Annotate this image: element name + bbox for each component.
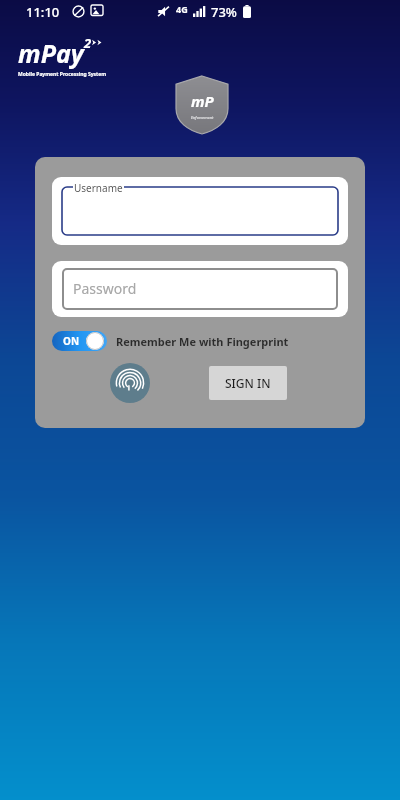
button[interactable]: SIGN IN [209, 366, 287, 400]
staticText: Username [74, 181, 123, 195]
staticText: SIGN IN [225, 375, 271, 391]
staticText: mP [191, 91, 214, 111]
button[interactable]: Username [52, 177, 348, 245]
staticText: Mobile Payment Processing System [18, 71, 107, 78]
staticText: 2 [84, 34, 92, 52]
staticText: mPay [18, 36, 84, 70]
button[interactable]: ON [52, 329, 289, 353]
staticText: Enforcement [191, 115, 214, 120]
staticText: 11:10 [26, 3, 60, 21]
button[interactable]: Password [52, 261, 348, 317]
button[interactable]: Sign in with fingerprint [110, 363, 150, 403]
staticText: Password [73, 279, 137, 298]
staticText: Remember Me with Fingerprint [116, 334, 289, 349]
staticText: 4G [176, 3, 188, 15]
staticText: 73% [211, 3, 237, 21]
staticText: ON [63, 334, 80, 348]
